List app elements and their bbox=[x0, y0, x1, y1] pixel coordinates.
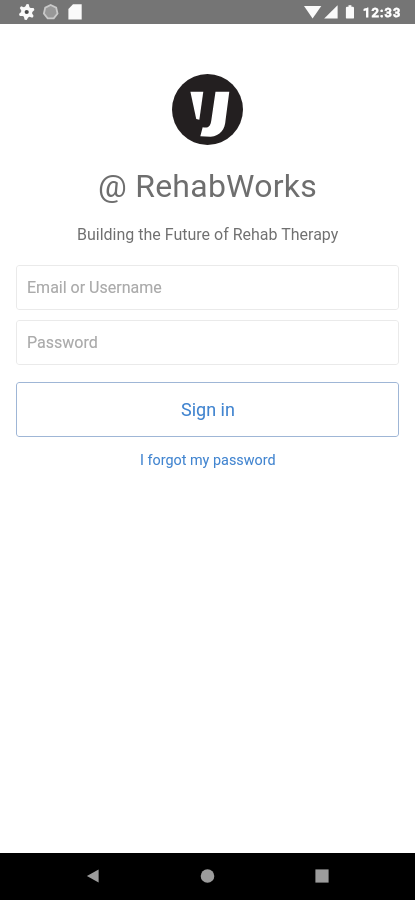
button[interactable]: Password bbox=[16, 320, 399, 365]
button[interactable]: Back bbox=[0, 853, 150, 900]
staticText: 12:33 bbox=[363, 5, 402, 20]
staticText: @ RehabWorks bbox=[98, 167, 318, 205]
staticText: Password bbox=[27, 333, 98, 352]
staticText: Building the Future of Rehab Therapy bbox=[77, 225, 339, 244]
staticText: Email or Username bbox=[27, 278, 162, 297]
button[interactable]: Recent apps bbox=[265, 853, 415, 900]
button[interactable]: Sign in bbox=[16, 382, 399, 437]
button[interactable]: Home bbox=[150, 853, 265, 900]
staticText: Sign in bbox=[181, 399, 235, 420]
button[interactable]: I forgot my password bbox=[134, 450, 282, 471]
staticText: I forgot my password bbox=[140, 452, 276, 469]
button[interactable]: Email or Username bbox=[16, 265, 399, 310]
